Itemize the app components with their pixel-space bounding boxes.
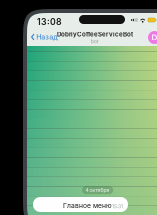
staticText: Назад: [36, 33, 58, 41]
staticText: D: [151, 33, 157, 42]
staticText: 4 октября: [86, 187, 110, 193]
staticText: DobriyCoffeeServiceBot: [57, 31, 133, 38]
button[interactable]: Главное меню: [33, 197, 128, 212]
staticText: bot: [91, 39, 99, 44]
button[interactable]: Назад: [28, 29, 61, 45]
staticText: Главное меню: [63, 202, 112, 210]
button[interactable]: Chat info: [148, 31, 157, 44]
staticText: 15:31: [112, 203, 123, 209]
staticText: 13:08: [37, 16, 62, 27]
